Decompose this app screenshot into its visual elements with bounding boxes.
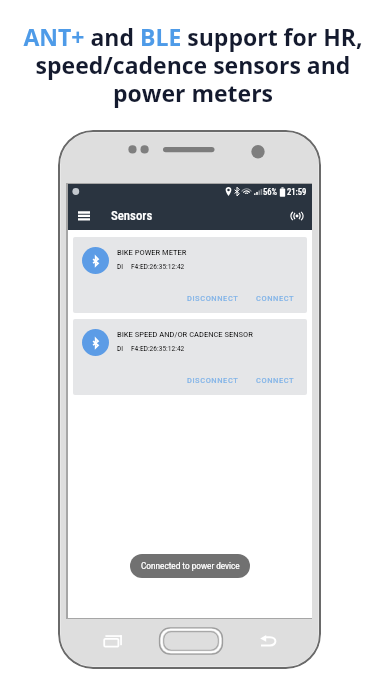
- staticText: DISCONNECT: [187, 376, 239, 385]
- staticText: CONNECT: [256, 376, 295, 385]
- staticText: Connected to power device: [141, 561, 240, 571]
- button[interactable]: CONNECT: [252, 291, 299, 306]
- staticText: DI: [117, 263, 124, 271]
- button[interactable]: Connected to power device: [130, 554, 250, 578]
- button[interactable]: DISCONNECT: [183, 291, 243, 306]
- button[interactable]: DISCONNECT: [183, 373, 243, 388]
- staticText: DI: [117, 345, 124, 353]
- staticText: CONNECT: [256, 294, 295, 303]
- staticText: BIKE POWER METER: [117, 248, 187, 257]
- button[interactable]: BIKE SPEED AND/OR CADENCE SENSOR: [73, 319, 307, 395]
- button[interactable]: BIKE POWER METER: [73, 237, 307, 313]
- staticText: Sensors: [111, 208, 153, 223]
- staticText: 21:59: [287, 187, 307, 197]
- staticText: 56%: [263, 187, 278, 197]
- button[interactable]: Scan for sensors: [287, 206, 307, 226]
- staticText: BIKE SPEED AND/OR CADENCE SENSOR: [117, 330, 253, 339]
- staticText: ANT+ and BLE support for HR, speed/caden…: [23, 21, 363, 109]
- button[interactable]: Open navigation menu: [75, 205, 93, 227]
- staticText: F4:ED:26:35:12:42: [131, 345, 185, 353]
- staticText: DISCONNECT: [187, 294, 239, 303]
- staticText: F4:ED:26:35:12:42: [131, 263, 185, 271]
- button[interactable]: CONNECT: [252, 373, 299, 388]
